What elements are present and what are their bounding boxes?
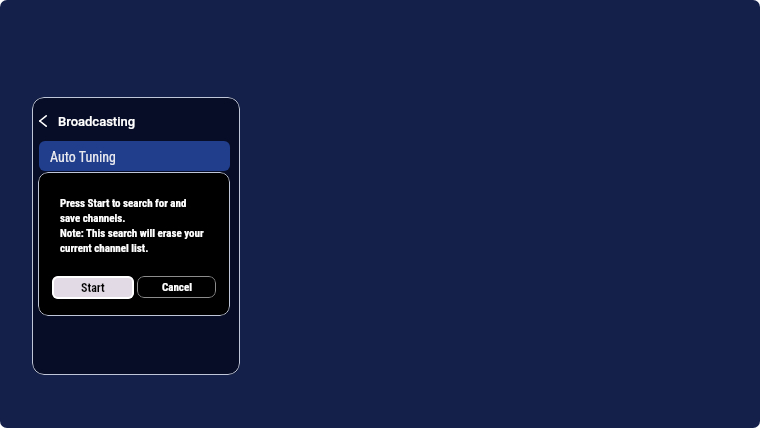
button[interactable]: Start: [52, 276, 134, 299]
button[interactable]: Back: [33, 109, 57, 133]
button[interactable]: Auto Tuning: [39, 141, 230, 171]
staticText: Broadcasting: [58, 114, 136, 129]
button[interactable]: Cancel: [137, 276, 216, 298]
staticText: Cancel: [162, 281, 192, 294]
staticText: Press Start to search for and save chann…: [60, 197, 204, 255]
staticText: Auto Tuning: [50, 149, 116, 165]
staticText: Start: [81, 281, 105, 295]
